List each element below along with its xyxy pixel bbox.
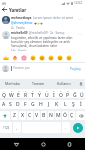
button[interactable]: 5 [29,89,36,98]
staticText: X [21,112,25,119]
staticText: Merhaba [5,81,20,86]
button[interactable]: . [62,122,70,133]
button[interactable]: Back [6,138,26,150]
button[interactable]: D [14,100,21,109]
staticText: I [53,92,55,98]
button[interactable]: 3 [15,89,22,98]
staticText: 1dk [11,49,16,51]
button[interactable]: Backspace [76,111,85,120]
button[interactable]: N [48,111,54,120]
button[interactable]: Home [33,138,53,150]
button[interactable]: C [27,111,33,120]
staticText: C [28,112,32,119]
staticText: B [42,112,46,119]
staticText: 2 [11,89,13,92]
button[interactable]: More options [77,16,83,22]
button[interactable]: Voice input [77,79,85,88]
button[interactable]: Emoji [19,53,28,62]
button[interactable]: M [55,111,61,120]
staticText: bugünden, etkinlik ve yapılması lazım ol… [11,36,73,40]
button[interactable]: Shift [0,111,10,120]
button[interactable]: More options [77,31,83,37]
staticText: 14:52 [74,1,83,5]
button[interactable]: , [13,122,21,133]
button[interactable]: michelle09 [0,29,85,51]
button[interactable]: F [21,100,29,109]
button[interactable]: 9 [57,89,64,98]
button[interactable]: A [0,100,7,109]
button[interactable]: Merhaba [0,79,25,88]
staticText: O [59,92,63,98]
staticText: N [49,112,53,119]
button[interactable]: 6 [36,89,43,98]
button[interactable]: K [53,100,61,109]
button[interactable]: Emoji [46,53,55,62]
staticText: Ş [72,101,75,108]
button[interactable]: Recents [59,138,79,150]
staticText: İ [80,101,82,108]
button[interactable]: 0 [64,89,71,98]
button[interactable]: V [34,111,40,120]
staticText: 3 [18,89,20,92]
button[interactable]: Ç [69,111,75,120]
staticText: W [9,92,14,98]
button[interactable]: Emoji [10,53,19,62]
button[interactable]: Z [11,111,18,120]
button[interactable]: Tamam [25,79,51,88]
button[interactable]: 8 [50,89,57,98]
button[interactable]: G [29,100,37,109]
button[interactable]: Emoji [64,53,73,62]
staticText: Tamam [32,81,45,86]
button[interactable]: Ğ [71,89,78,98]
button[interactable]: Ü [78,89,85,98]
staticText: Lorem ipsum dolor sit amet [33,16,74,20]
staticText: bunu bir şey olmasını bekleyelim ve artı… [11,40,70,44]
staticText: H [39,101,43,108]
staticText: @ahmetyilmaz [11,21,33,25]
button[interactable]: Emoji [28,53,37,62]
staticText: Sonuçlandı, olsun bakalım neler [11,44,58,48]
button[interactable]: Ö [62,111,68,120]
button[interactable]: Emoji [55,53,64,62]
button[interactable]: Kullanıcı [51,79,77,88]
button[interactable]: Enter [71,122,85,133]
staticText: 2s [11,26,14,29]
staticText: 8 [53,89,55,92]
staticText: U [45,92,49,98]
button[interactable]: B [41,111,47,120]
button[interactable]: 7 [43,89,50,98]
staticText: G [31,101,35,108]
button[interactable]: H [37,100,45,109]
button[interactable]: Back [0,6,9,13]
button[interactable]: Ş [69,100,77,109]
button[interactable]: mehmetkaya [0,13,85,29]
button[interactable]: L [61,100,69,109]
button[interactable]: 1 [0,89,8,98]
button[interactable]: X [19,111,26,120]
staticText: ?123 [3,126,10,130]
staticText: E [17,92,20,98]
button[interactable]: Emoji [1,53,10,62]
staticText: T [31,92,34,98]
button[interactable]: Emoji [37,53,46,62]
staticText: Ç [70,112,74,119]
staticText: J [48,101,50,108]
staticText: Yanıtla [16,26,25,29]
button[interactable]: Paylaş [68,65,83,72]
staticText: 1 [3,89,5,92]
button[interactable]: S [7,100,14,109]
staticText: Ü [80,92,84,98]
staticText: Yanıtını yaz [13,66,30,70]
staticText: D [16,101,20,108]
staticText: Z [13,112,16,119]
button[interactable]: İ [77,100,85,109]
staticText: F [24,101,27,108]
staticText: Kullanıcı [57,81,71,86]
staticText: . [65,125,67,130]
button[interactable]: 2 [8,89,15,98]
button[interactable]: J [45,100,53,109]
button[interactable]: ?123 [0,122,12,133]
button[interactable]: 4 [22,89,29,98]
staticText: Yanıtlar [9,7,27,13]
